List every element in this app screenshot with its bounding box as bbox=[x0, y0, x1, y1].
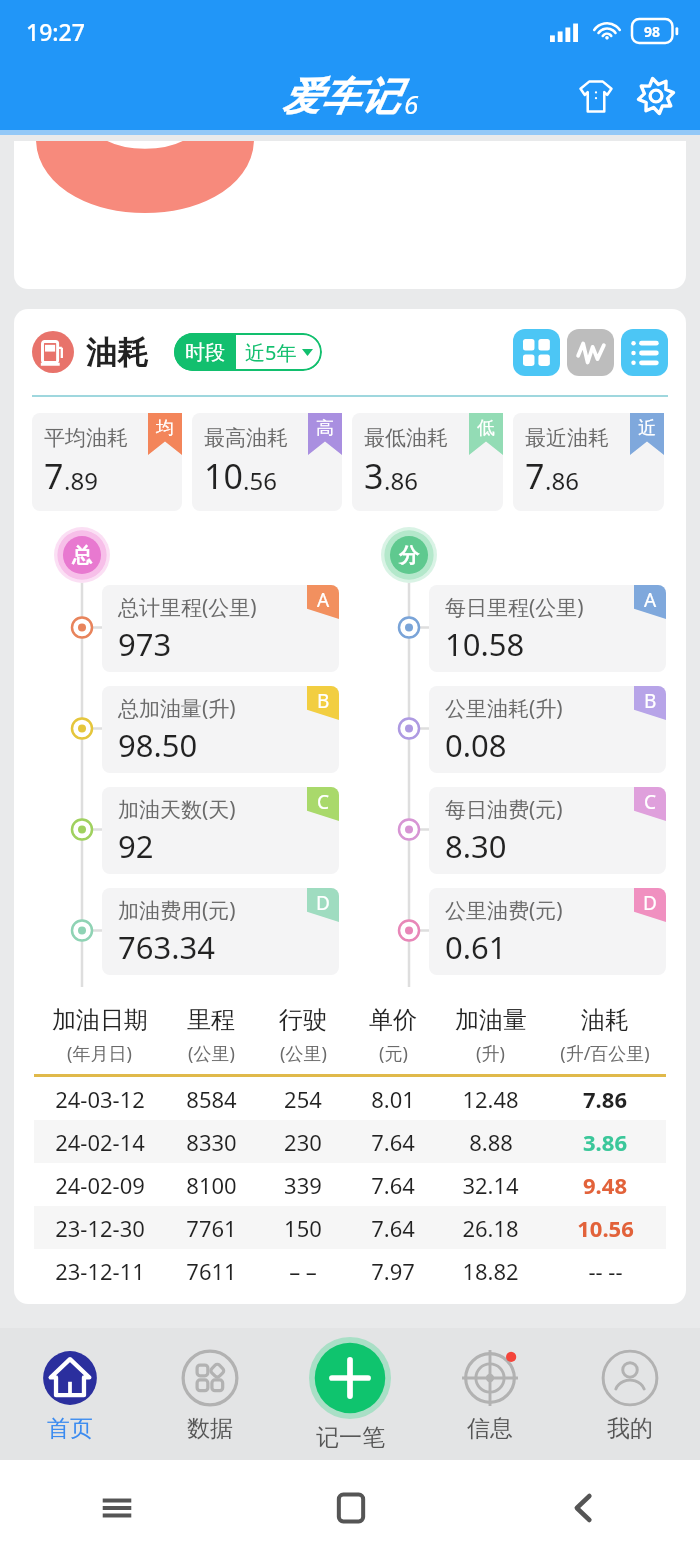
staticText: 平均油耗 bbox=[44, 425, 128, 451]
staticText: 单价 bbox=[369, 1005, 417, 1035]
button[interactable]: 首页 bbox=[0, 1328, 140, 1460]
staticText: 7611 bbox=[186, 1256, 237, 1286]
staticText: 10.56 bbox=[577, 1213, 634, 1243]
staticText: 24-02-14 bbox=[55, 1127, 145, 1157]
staticText: 里程 bbox=[187, 1005, 235, 1035]
staticText: 每日油费(元) bbox=[445, 795, 563, 824]
staticText: 973 bbox=[118, 623, 172, 665]
staticText: C bbox=[317, 789, 330, 815]
staticText: 低 bbox=[477, 417, 495, 440]
staticText: 公里油费(元) bbox=[445, 896, 563, 925]
staticText: 8.01 bbox=[371, 1084, 415, 1114]
staticText: (升/百公里) bbox=[560, 1041, 650, 1066]
staticText: 均 bbox=[156, 417, 174, 440]
button[interactable]: Settings bbox=[632, 72, 680, 120]
staticText: 8.88 bbox=[469, 1127, 513, 1157]
staticText: A bbox=[644, 587, 657, 613]
staticText: 记一笔 bbox=[316, 1423, 385, 1452]
staticText: 7 bbox=[44, 453, 64, 499]
staticText: 油耗 bbox=[86, 333, 148, 372]
staticText: .86 bbox=[545, 464, 579, 497]
staticText: 18.82 bbox=[462, 1256, 519, 1286]
staticText: 3 bbox=[364, 453, 384, 499]
button[interactable]: Home bbox=[335, 1492, 367, 1524]
button[interactable]: Theme bbox=[572, 72, 620, 120]
button[interactable]: 最低油耗 bbox=[352, 413, 503, 511]
staticText: 加油天数(天) bbox=[118, 795, 236, 824]
button[interactable]: List view bbox=[621, 329, 668, 376]
staticText: 6 bbox=[404, 86, 419, 121]
staticText: .89 bbox=[64, 464, 98, 497]
button[interactable]: 23-12-11 bbox=[34, 1249, 666, 1292]
staticText: 最低油耗 bbox=[364, 425, 448, 451]
staticText: 12.48 bbox=[462, 1084, 519, 1114]
staticText: 32.14 bbox=[462, 1170, 519, 1200]
staticText: 19:27 bbox=[26, 16, 85, 47]
button[interactable]: Grid view bbox=[513, 329, 560, 376]
button[interactable]: 信息 bbox=[420, 1328, 560, 1460]
staticText: 信息 bbox=[467, 1414, 513, 1443]
button[interactable]: 时段 bbox=[174, 333, 322, 371]
button[interactable]: 加油天数(天) bbox=[102, 787, 339, 874]
button[interactable]: Recents bbox=[100, 1491, 134, 1525]
button[interactable]: 公里油耗(升) bbox=[429, 686, 666, 773]
button[interactable]: 23-12-30 bbox=[34, 1206, 666, 1249]
staticText: 我的 bbox=[607, 1414, 653, 1443]
staticText: 763.34 bbox=[118, 926, 215, 968]
button[interactable] bbox=[14, 141, 686, 289]
button[interactable]: 记一笔 bbox=[280, 1328, 420, 1460]
staticText: 7.64 bbox=[371, 1127, 415, 1157]
staticText: 时段 bbox=[185, 340, 225, 365]
button[interactable]: 24-02-14 bbox=[34, 1120, 666, 1163]
staticText: 加油量 bbox=[455, 1005, 527, 1035]
staticText: 0.08 bbox=[445, 724, 507, 766]
button[interactable]: 总计里程(公里) bbox=[102, 585, 339, 672]
staticText: B bbox=[317, 688, 330, 714]
button[interactable]: 我的 bbox=[560, 1328, 700, 1460]
staticText: 10 bbox=[204, 453, 243, 499]
staticText: 行驶 bbox=[279, 1005, 327, 1035]
button[interactable]: 每日油费(元) bbox=[429, 787, 666, 874]
staticText: 254 bbox=[284, 1084, 322, 1114]
staticText: 0.61 bbox=[445, 926, 507, 968]
button[interactable]: 每日里程(公里) bbox=[429, 585, 666, 672]
button[interactable]: 24-02-09 bbox=[34, 1163, 666, 1206]
staticText: 3.86 bbox=[583, 1127, 627, 1157]
button[interactable]: 公里油费(元) bbox=[429, 888, 666, 975]
staticText: 最高油耗 bbox=[204, 425, 288, 451]
staticText: 7.64 bbox=[371, 1213, 415, 1243]
staticText: 分 bbox=[399, 543, 419, 568]
staticText: 23-12-30 bbox=[55, 1213, 145, 1243]
button[interactable]: 加油费用(元) bbox=[102, 888, 339, 975]
staticText: 公里油耗(升) bbox=[445, 694, 563, 723]
button[interactable]: Chart view bbox=[567, 329, 614, 376]
button[interactable]: 最近油耗 bbox=[513, 413, 664, 511]
staticText: B bbox=[644, 688, 657, 714]
staticText: 10.58 bbox=[445, 623, 525, 665]
staticText: 7.97 bbox=[371, 1256, 415, 1286]
button[interactable]: 平均油耗 bbox=[32, 413, 182, 511]
button[interactable]: 24-03-12 bbox=[34, 1077, 666, 1120]
staticText: 近 bbox=[638, 417, 656, 440]
staticText: C bbox=[644, 789, 657, 815]
button[interactable]: 总加油量(升) bbox=[102, 686, 339, 773]
button[interactable]: 最高油耗 bbox=[192, 413, 342, 511]
button[interactable]: 数据 bbox=[140, 1328, 280, 1460]
staticText: 总计里程(公里) bbox=[118, 593, 257, 622]
staticText: 24-02-09 bbox=[55, 1170, 145, 1200]
staticText: 26.18 bbox=[462, 1213, 519, 1243]
staticText: (升) bbox=[476, 1041, 505, 1066]
staticText: (元) bbox=[379, 1041, 408, 1066]
staticText: 23-12-11 bbox=[55, 1256, 145, 1286]
staticText: 8.30 bbox=[445, 825, 507, 867]
staticText: 98.50 bbox=[118, 724, 198, 766]
staticText: 总加油量(升) bbox=[118, 694, 236, 723]
staticText: 每日里程(公里) bbox=[445, 593, 584, 622]
button[interactable]: Back bbox=[569, 1493, 599, 1523]
staticText: 7761 bbox=[186, 1213, 237, 1243]
staticText: 高 bbox=[316, 417, 334, 440]
staticText: 230 bbox=[284, 1127, 322, 1157]
staticText: – – bbox=[289, 1256, 317, 1286]
staticText: 首页 bbox=[47, 1414, 93, 1443]
staticText: 油耗 bbox=[581, 1005, 629, 1035]
